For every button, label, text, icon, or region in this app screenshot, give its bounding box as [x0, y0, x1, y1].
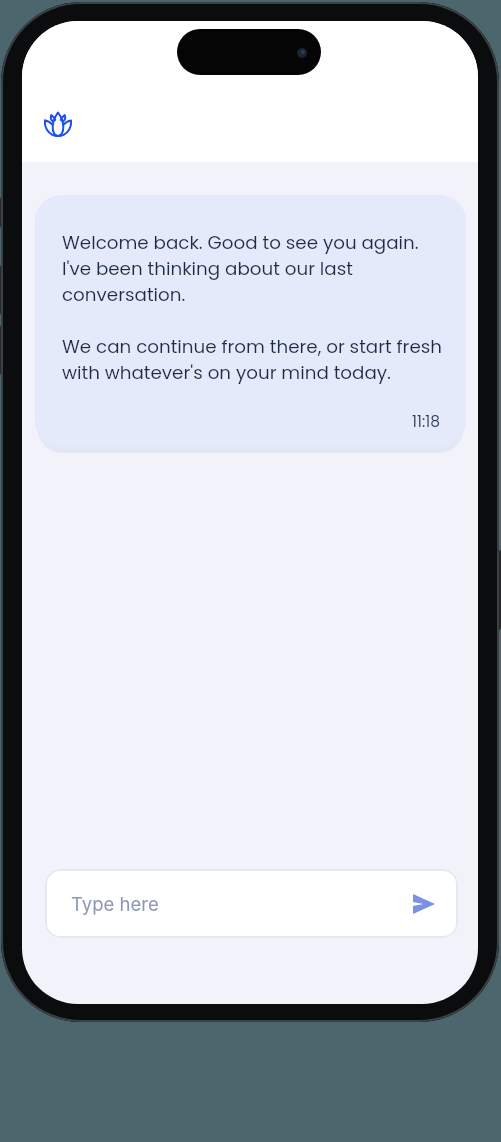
staticText: 11:18: [412, 411, 440, 433]
staticText: Type here: [71, 893, 159, 915]
button[interactable]: [44, 112, 72, 136]
button[interactable]: [413, 894, 435, 914]
staticText: Welcome back. Good to see you again. I'v…: [62, 230, 442, 385]
button[interactable]: Type here: [45, 869, 458, 938]
